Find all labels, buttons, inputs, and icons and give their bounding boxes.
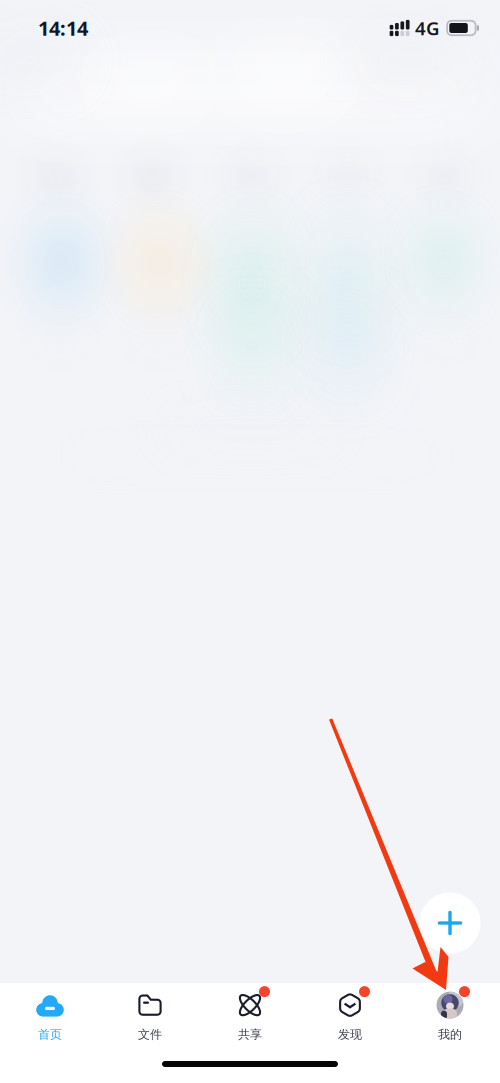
staticText: 共享 — [238, 1027, 262, 1042]
button[interactable]: 我的 — [400, 983, 500, 1049]
staticText: 首页 — [38, 1027, 62, 1042]
staticText: 4G — [415, 16, 440, 40]
button[interactable]: 发现 — [300, 983, 400, 1049]
button[interactable]: 共享 — [200, 983, 300, 1049]
staticText: 发现 — [338, 1027, 362, 1042]
button[interactable]: 新建 — [419, 892, 480, 954]
button[interactable]: 文件 — [100, 983, 200, 1049]
staticText: 我的 — [438, 1027, 462, 1042]
staticText: 文件 — [138, 1027, 162, 1042]
button[interactable]: 首页 — [0, 983, 100, 1049]
staticText: 14:14 — [38, 15, 88, 41]
